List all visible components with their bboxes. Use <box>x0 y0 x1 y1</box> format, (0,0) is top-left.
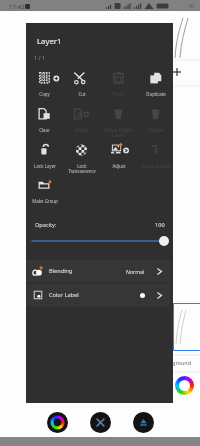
button[interactable]: Duplicate <box>137 71 174 101</box>
button[interactable]: Home <box>133 412 154 433</box>
staticText: Normal <box>126 268 145 275</box>
staticText: 1 / 1 <box>34 54 46 61</box>
staticText: Clear <box>39 127 50 133</box>
staticText: ground <box>172 359 192 366</box>
button[interactable]: Lock Transparency <box>63 143 100 173</box>
staticText: Opacity: <box>35 221 57 229</box>
button[interactable]: Clear <box>26 107 63 137</box>
staticText: Blending <box>49 267 73 275</box>
staticText: Duplicate <box>146 91 166 97</box>
staticText: 41 <box>189 3 195 10</box>
staticText: Merge <box>75 127 89 133</box>
staticText: Color Label <box>49 291 79 299</box>
button[interactable]: Color picker <box>47 412 68 433</box>
button[interactable]: Blending <box>26 260 170 282</box>
staticText: Paste <box>113 91 125 97</box>
button[interactable]: Lock Layer <box>26 143 63 173</box>
staticText: Lock Layer <box>34 163 56 169</box>
staticText: Adjust <box>112 163 126 169</box>
staticText: 100 <box>155 221 165 229</box>
staticText: Delete Hidden Layers <box>104 127 134 137</box>
staticText: Cut <box>78 91 86 97</box>
button[interactable]: Merge <box>63 107 100 137</box>
staticText: Clipping Mask <box>141 163 171 169</box>
button[interactable]: Adjust <box>100 143 137 173</box>
button[interactable]: Paste <box>100 71 137 101</box>
button[interactable]: Delete Hidden Layers <box>100 107 137 137</box>
button[interactable]: Copy <box>26 71 63 101</box>
button[interactable]: Make Group <box>26 178 63 208</box>
button[interactable]: Delete <box>137 107 174 137</box>
staticText: 17:42 <box>9 3 25 11</box>
button[interactable]: Clipping Mask <box>137 143 174 173</box>
button[interactable]: Layer thumbnail <box>173 303 200 351</box>
button[interactable]: Color Label <box>26 284 170 306</box>
button[interactable]: Opacity slider <box>28 234 172 248</box>
staticText: Delete <box>149 127 163 133</box>
button[interactable]: Close <box>90 412 111 433</box>
staticText: Make Group <box>32 198 58 204</box>
staticText: Layer1 <box>37 36 62 47</box>
staticText: Lock Transparency <box>68 163 96 173</box>
button[interactable]: Cut <box>63 71 100 101</box>
staticText: Copy <box>39 91 50 97</box>
